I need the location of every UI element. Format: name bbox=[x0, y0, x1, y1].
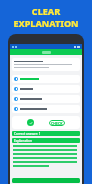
button[interactable] bbox=[12, 75, 80, 83]
button[interactable]: CHECK bbox=[49, 120, 65, 126]
button[interactable] bbox=[12, 85, 80, 93]
button[interactable]: Explanation bbox=[12, 138, 80, 143]
staticText: Explanation bbox=[14, 139, 33, 143]
staticText: Mistake Review bbox=[19, 32, 74, 42]
staticText: CLEAR EXPLANATION bbox=[0, 5, 92, 29]
button[interactable] bbox=[12, 95, 80, 103]
button[interactable]: Confirm bbox=[27, 119, 34, 126]
staticText: CHECK bbox=[51, 121, 63, 126]
button[interactable] bbox=[12, 105, 80, 113]
staticText: Correct answer: 1 bbox=[14, 132, 41, 136]
button[interactable]: Next bbox=[12, 178, 80, 183]
button[interactable]: Correct answer: 1 bbox=[12, 131, 80, 136]
button[interactable]: App bar bbox=[10, 49, 82, 55]
